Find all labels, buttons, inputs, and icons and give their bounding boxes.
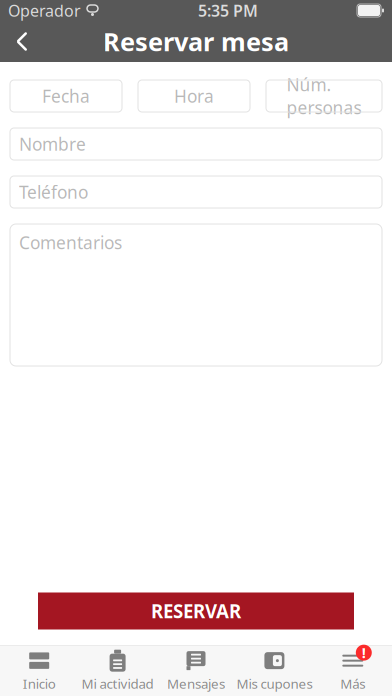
button[interactable]: !	[314, 646, 392, 696]
staticText: Fecha	[42, 84, 90, 107]
staticText: Mensajes	[167, 675, 225, 692]
button[interactable]: RESERVAR	[38, 592, 354, 629]
button[interactable]: Back	[0, 21, 44, 61]
staticText: Mi actividad	[82, 675, 154, 692]
staticText: Teléfono	[19, 180, 88, 203]
button[interactable]: Mensajes	[157, 646, 235, 696]
button[interactable]: Mi actividad	[78, 646, 157, 696]
staticText: Reservar mesa	[103, 25, 289, 58]
button[interactable]: Hora	[138, 80, 250, 112]
staticText: Hora	[174, 84, 214, 107]
staticText: Nombre	[19, 132, 86, 155]
staticText: Inicio	[23, 675, 56, 692]
button[interactable]: Nombre	[10, 128, 382, 160]
staticText: Operador	[8, 0, 81, 21]
button[interactable]: Fecha	[10, 80, 122, 112]
staticText: Mis cupones	[236, 675, 312, 692]
button[interactable]: Mis cupones	[235, 646, 314, 696]
staticText: Comentarios	[19, 231, 122, 254]
staticText: 5:35 PM	[198, 0, 258, 21]
staticText: Más	[340, 675, 365, 692]
button[interactable]: Núm. personas	[266, 80, 382, 112]
staticText: Núm. personas	[286, 73, 361, 119]
button[interactable]: Teléfono	[10, 176, 382, 208]
staticText: RESERVAR	[151, 599, 241, 623]
button[interactable]: Inicio	[0, 646, 78, 696]
button[interactable]: Comentarios	[10, 224, 382, 366]
staticText: !	[362, 643, 366, 662]
